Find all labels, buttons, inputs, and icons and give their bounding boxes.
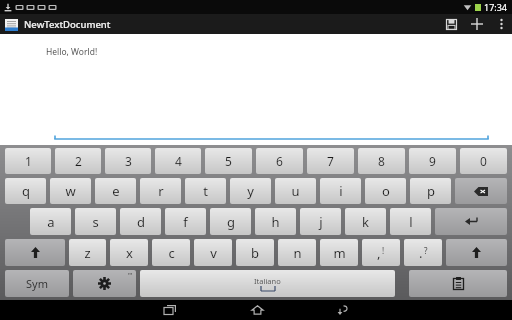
button[interactable]: 7	[307, 148, 354, 174]
staticText: h	[271, 213, 280, 231]
staticText: 1	[25, 153, 32, 169]
staticText: q	[22, 182, 30, 200]
staticText: m	[333, 244, 346, 262]
staticText: k	[362, 213, 369, 231]
button[interactable]: 8	[358, 148, 405, 174]
button[interactable]: x	[110, 239, 148, 266]
staticText: .	[419, 244, 423, 262]
button[interactable]: m	[320, 239, 358, 266]
staticText: 2	[75, 153, 82, 169]
staticText: z	[84, 244, 91, 262]
button[interactable]: 2	[55, 148, 101, 174]
staticText: Hello, World!	[46, 46, 98, 58]
button[interactable]: q	[5, 178, 46, 204]
button[interactable]: 3	[105, 148, 151, 174]
button[interactable]: o	[365, 178, 406, 204]
staticText: e	[112, 182, 120, 200]
button[interactable]: t	[185, 178, 226, 204]
staticText: 7	[327, 153, 334, 169]
staticText: n	[293, 244, 302, 262]
button[interactable]: g	[210, 208, 251, 235]
staticText: 4	[175, 153, 182, 169]
button[interactable]: h	[255, 208, 296, 235]
staticText: j	[319, 213, 323, 231]
button[interactable]: Back	[328, 300, 358, 320]
staticText: v	[210, 244, 217, 262]
staticText: d	[137, 213, 145, 231]
button[interactable]: New	[464, 14, 490, 34]
button[interactable]: 9	[409, 148, 456, 174]
button[interactable]: b	[236, 239, 274, 266]
button[interactable]: Shift	[446, 239, 507, 266]
staticText: y	[247, 182, 254, 200]
staticText: p	[427, 182, 435, 200]
staticText: l	[409, 213, 413, 231]
button[interactable]: k	[345, 208, 386, 235]
staticText: t	[203, 182, 208, 200]
staticText: 17:34	[484, 1, 508, 13]
button[interactable]: 0	[460, 148, 507, 174]
staticText: ?	[424, 245, 428, 256]
button[interactable]: NewTextDocument	[5, 18, 111, 31]
button[interactable]: a	[30, 208, 71, 235]
staticText: !	[382, 245, 385, 256]
button[interactable]: More options	[490, 14, 512, 34]
staticText: x	[126, 244, 133, 262]
staticText: 0	[480, 153, 487, 169]
button[interactable]: Backspace	[455, 178, 507, 204]
staticText: a	[47, 213, 55, 231]
button[interactable]: f	[165, 208, 206, 235]
button[interactable]: Home	[242, 300, 272, 320]
button[interactable]: r	[140, 178, 181, 204]
staticText: 8	[378, 153, 385, 169]
staticText: w	[65, 182, 76, 200]
button[interactable]: 5	[205, 148, 252, 174]
button[interactable]: j	[300, 208, 341, 235]
button[interactable]: y	[230, 178, 271, 204]
button[interactable]: .	[404, 239, 442, 266]
button[interactable]: 1	[5, 148, 51, 174]
button[interactable]: s	[75, 208, 116, 235]
staticText: u	[291, 182, 300, 200]
button[interactable]: Enter	[435, 208, 507, 235]
staticText: o	[382, 182, 390, 200]
button[interactable]: Save	[438, 14, 464, 34]
staticText: 3	[125, 153, 132, 169]
staticText: 6	[276, 153, 283, 169]
button[interactable]: Recents	[155, 300, 185, 320]
button[interactable]: 4	[155, 148, 201, 174]
staticText: c	[168, 244, 175, 262]
staticText: Italiano	[254, 276, 281, 286]
button[interactable]: ,	[362, 239, 400, 266]
button[interactable]: d	[120, 208, 161, 235]
button[interactable]: i	[320, 178, 361, 204]
button[interactable]: 6	[256, 148, 303, 174]
button[interactable]: Clipboard	[409, 270, 507, 297]
button[interactable]: n	[278, 239, 316, 266]
staticText: s	[92, 213, 99, 231]
staticText: Sym	[26, 276, 48, 291]
button[interactable]: Sym	[5, 270, 69, 297]
button[interactable]: Input settings	[73, 270, 136, 297]
staticText: NewTextDocument	[24, 18, 111, 31]
button[interactable]: Space	[140, 270, 395, 297]
staticText: r	[158, 182, 164, 200]
staticText: ,	[377, 244, 381, 262]
staticText: f	[183, 213, 188, 231]
button[interactable]: c	[152, 239, 190, 266]
button[interactable]: e	[95, 178, 136, 204]
button[interactable]: u	[275, 178, 316, 204]
staticText: 9	[429, 153, 436, 169]
button[interactable]: w	[50, 178, 91, 204]
button[interactable]: p	[410, 178, 451, 204]
staticText: g	[227, 213, 235, 231]
staticText: i	[339, 182, 343, 200]
staticText: "'	[128, 271, 133, 281]
button[interactable]: v	[194, 239, 232, 266]
staticText: 5	[225, 153, 232, 169]
staticText: b	[251, 244, 259, 262]
button[interactable]: Shift	[5, 239, 65, 266]
button[interactable]: l	[390, 208, 431, 235]
button[interactable]: z	[69, 239, 106, 266]
